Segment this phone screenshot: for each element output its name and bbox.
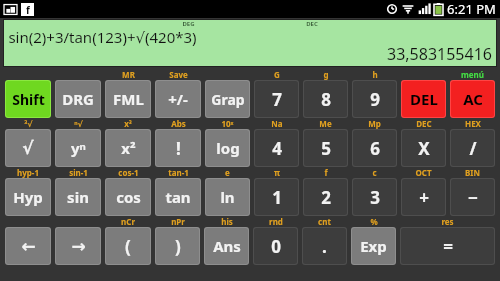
button[interactable]: 7	[255, 81, 298, 117]
staticText: OCT	[415, 167, 432, 178]
button[interactable]: 8	[304, 81, 347, 117]
button[interactable]: yⁿ	[56, 130, 100, 166]
button[interactable]: x²	[106, 130, 150, 166]
button[interactable]: !	[156, 130, 200, 166]
button[interactable]: )	[156, 228, 199, 264]
button[interactable]: FML	[106, 81, 150, 117]
button[interactable]: 4	[255, 130, 298, 166]
staticText: Me	[319, 118, 332, 129]
staticText: +/-	[168, 89, 188, 109]
button[interactable]: /	[451, 130, 494, 166]
staticText: (	[125, 235, 131, 258]
button[interactable]: X	[402, 130, 445, 166]
staticText: Shift	[12, 90, 45, 109]
staticText: 3	[370, 186, 380, 209]
button[interactable]: (	[106, 228, 150, 264]
button[interactable]: cos	[106, 179, 150, 215]
staticText: cnt	[318, 216, 331, 227]
button[interactable]: 3	[353, 179, 396, 215]
button[interactable]: 2	[304, 179, 347, 215]
staticText: )	[175, 235, 181, 258]
staticText: /	[469, 137, 477, 160]
staticText: BIN	[465, 167, 480, 178]
staticText: 1	[272, 186, 282, 209]
staticText: rnd	[269, 216, 283, 227]
staticText: menú	[461, 69, 484, 80]
button[interactable]: Ans	[205, 228, 248, 264]
staticText: 33,583155416	[387, 43, 492, 65]
staticText: h	[372, 69, 378, 80]
button[interactable]: 5	[304, 130, 347, 166]
button[interactable]: ln	[206, 179, 249, 215]
staticText: nPr	[171, 216, 185, 227]
staticText: Exp	[360, 236, 387, 256]
button[interactable]: √	[6, 130, 50, 166]
staticText: g	[323, 69, 329, 80]
staticText: −	[468, 186, 478, 209]
button[interactable]: →	[56, 228, 100, 264]
staticText: 4	[272, 137, 282, 160]
button[interactable]: Grap	[206, 81, 249, 117]
staticText: c	[372, 167, 377, 178]
staticText: Na	[271, 118, 283, 129]
staticText: π	[274, 167, 280, 178]
staticText: 5	[321, 137, 331, 160]
staticText: Mp	[368, 118, 381, 129]
staticText: .	[322, 235, 327, 258]
staticText: f	[26, 3, 30, 16]
staticText: ³√	[24, 118, 33, 129]
staticText: DEG	[182, 20, 195, 28]
button[interactable]: 0	[254, 228, 297, 264]
staticText: FML	[113, 89, 144, 109]
button[interactable]: +	[402, 179, 445, 215]
staticText: x²	[121, 138, 136, 158]
button[interactable]: DEL	[402, 81, 445, 117]
staticText: DEL	[410, 89, 438, 109]
button[interactable]: 9	[353, 81, 396, 117]
staticText: f	[324, 167, 328, 178]
button[interactable]: Hyp	[6, 179, 50, 215]
button[interactable]: AC	[451, 81, 494, 117]
staticText: DEC	[416, 118, 432, 129]
staticText: ⁿ√	[74, 118, 83, 129]
staticText: 6	[370, 137, 380, 160]
staticText: e	[225, 167, 230, 178]
staticText: Ans	[213, 236, 241, 256]
staticText: hyp-1	[17, 167, 39, 178]
button[interactable]: 1	[255, 179, 298, 215]
button[interactable]: DRG	[56, 81, 100, 117]
button[interactable]: Exp	[352, 228, 395, 264]
button[interactable]: .	[303, 228, 346, 264]
staticText: ←	[21, 236, 36, 256]
staticText: X	[418, 137, 430, 160]
staticText: 7	[272, 88, 282, 111]
button[interactable]: ←	[6, 228, 50, 264]
staticText: Grap	[211, 90, 245, 109]
button[interactable]: log	[206, 130, 249, 166]
staticText: tan	[165, 187, 191, 207]
button[interactable]: −	[451, 179, 494, 215]
button[interactable]: 6	[353, 130, 396, 166]
button[interactable]: sin	[56, 179, 100, 215]
staticText: DEC	[306, 20, 318, 28]
staticText: tan-1	[168, 167, 189, 178]
staticText: 0	[271, 235, 281, 258]
staticText: log	[216, 138, 240, 158]
staticText: cos	[116, 187, 141, 207]
button[interactable]: +/-	[156, 81, 200, 117]
button[interactable]: Shift	[6, 81, 50, 117]
staticText: !	[176, 137, 181, 160]
staticText: nCr	[121, 216, 135, 227]
staticText: 8	[321, 88, 331, 111]
staticText: Abs	[171, 118, 186, 129]
staticText: 10ˣ	[221, 118, 234, 129]
button[interactable]: tan	[156, 179, 200, 215]
staticText: AC	[463, 89, 483, 109]
staticText: +	[419, 186, 429, 209]
staticText: sin-1	[69, 167, 88, 178]
staticText: his	[221, 216, 233, 227]
staticText: %	[370, 216, 378, 227]
button[interactable]: =	[401, 228, 494, 264]
staticText: =	[443, 235, 453, 258]
staticText: 9	[370, 88, 380, 111]
